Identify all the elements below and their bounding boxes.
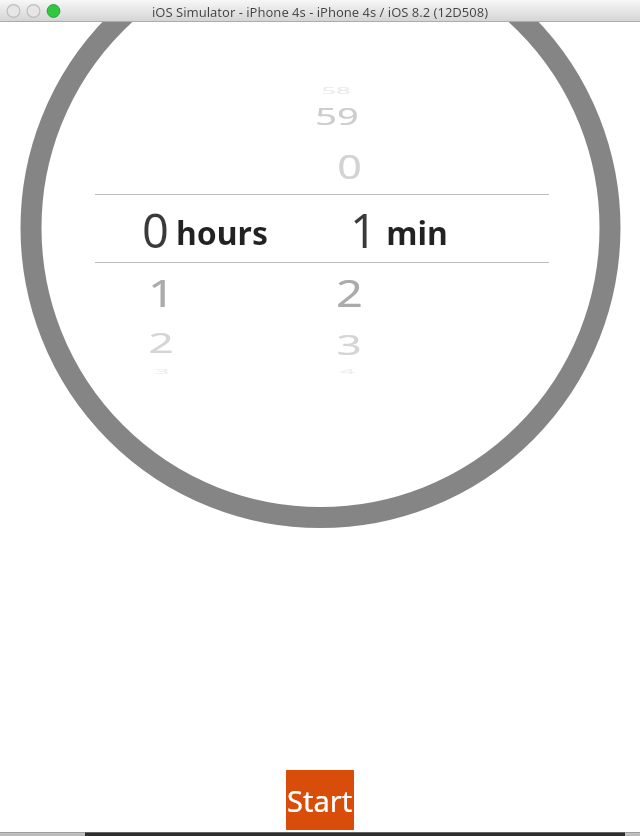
staticText: 0 xyxy=(337,144,362,189)
staticText: 3 xyxy=(153,366,170,376)
staticText: Start xyxy=(287,781,353,820)
staticText: 59 xyxy=(315,100,359,132)
staticText: 1 xyxy=(350,198,377,262)
staticText: iOS Simulator - iPhone 4s - iPhone 4s / … xyxy=(152,3,489,21)
staticText: 3 xyxy=(336,325,362,363)
staticText: 2 xyxy=(148,323,174,361)
staticText: 1 xyxy=(148,267,175,319)
staticText: min xyxy=(386,211,448,255)
staticText: 2 xyxy=(336,267,363,319)
button[interactable]: Start xyxy=(286,770,354,830)
staticText: 4 xyxy=(339,366,356,376)
staticText: 0 xyxy=(142,198,169,262)
staticText: hours xyxy=(176,211,268,255)
staticText: 58 xyxy=(321,85,351,96)
